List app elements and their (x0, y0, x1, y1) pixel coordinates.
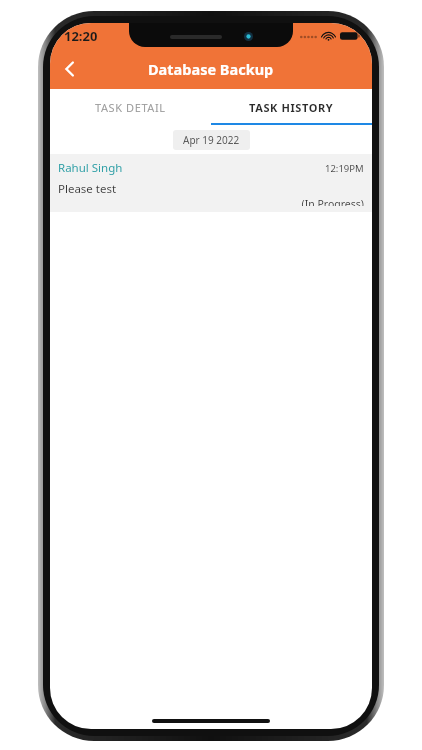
staticText: (In Progress) (58, 197, 364, 206)
staticText: TASK DETAIL (95, 100, 166, 115)
staticText: Rahul Singh (58, 160, 123, 176)
staticText: Database Backup (148, 59, 274, 79)
button[interactable]: Back (50, 49, 90, 89)
button[interactable]: TASK DETAIL (50, 89, 211, 125)
staticText: Apr 19 2022 (183, 133, 240, 147)
staticText: TASK HISTORY (249, 100, 334, 115)
staticText: Please test (58, 181, 117, 197)
staticText: 12:19PM (325, 162, 364, 175)
staticText: 12:20 (64, 27, 98, 45)
button[interactable]: TASK HISTORY (211, 89, 372, 125)
button[interactable]: Rahul Singh (50, 154, 372, 212)
